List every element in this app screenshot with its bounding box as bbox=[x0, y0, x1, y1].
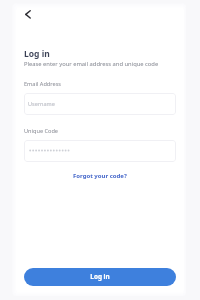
button[interactable]: Unique code bbox=[24, 140, 176, 162]
staticText: Log in bbox=[90, 272, 110, 281]
staticText: Log in bbox=[24, 48, 50, 60]
staticText: Email Address bbox=[24, 80, 61, 88]
staticText: Unique Code bbox=[24, 127, 59, 135]
button[interactable]: Forgot your code? bbox=[69, 169, 131, 183]
staticText: Forgot your code? bbox=[73, 172, 127, 180]
button[interactable]: Back bbox=[14, 3, 37, 26]
button[interactable]: Log in bbox=[24, 268, 176, 286]
button[interactable]: Username bbox=[24, 93, 176, 115]
staticText: Please enter your email address and uniq… bbox=[24, 60, 159, 68]
staticText: Username bbox=[28, 100, 55, 107]
